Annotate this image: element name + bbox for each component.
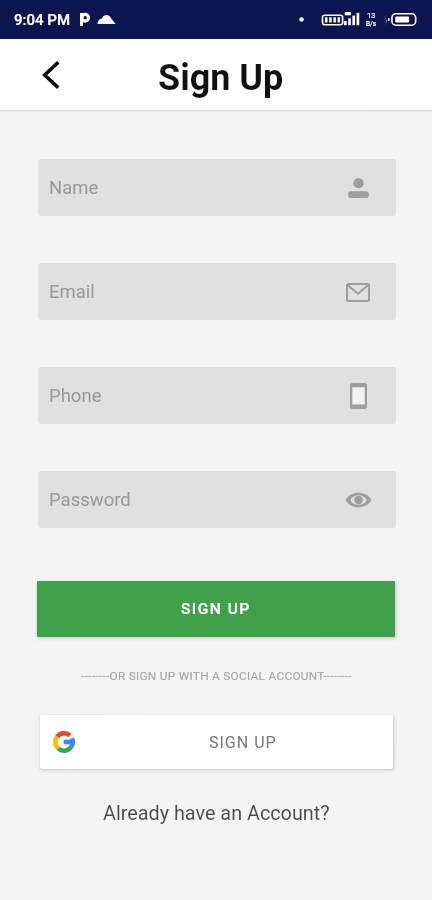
button[interactable]: Name	[38, 159, 396, 216]
button[interactable]: SIGN UP	[40, 715, 393, 769]
staticText: Password	[49, 489, 131, 511]
button[interactable]: SIGN UP	[37, 581, 395, 637]
staticText: Phone	[49, 385, 102, 407]
staticText: 9:04 PM	[14, 11, 71, 29]
button[interactable]: Back	[28, 53, 72, 97]
staticText: Sign Up	[158, 57, 284, 99]
staticText: SIGN UP	[181, 600, 251, 618]
staticText: Name	[49, 177, 99, 199]
button[interactable]: Phone	[38, 367, 396, 424]
staticText: B/s	[366, 20, 377, 28]
staticText: SIGN UP	[209, 733, 277, 752]
staticText: Email	[49, 281, 95, 303]
button[interactable]: Password	[38, 471, 396, 528]
button[interactable]: Email	[38, 263, 396, 320]
staticText: 13	[367, 11, 376, 20]
staticText: Already have an Account?	[103, 802, 330, 825]
button[interactable]: Already have an Account?	[0, 796, 432, 830]
staticText: --------OR SIGN UP WITH A SOCIAL ACCOUNT…	[81, 669, 352, 683]
